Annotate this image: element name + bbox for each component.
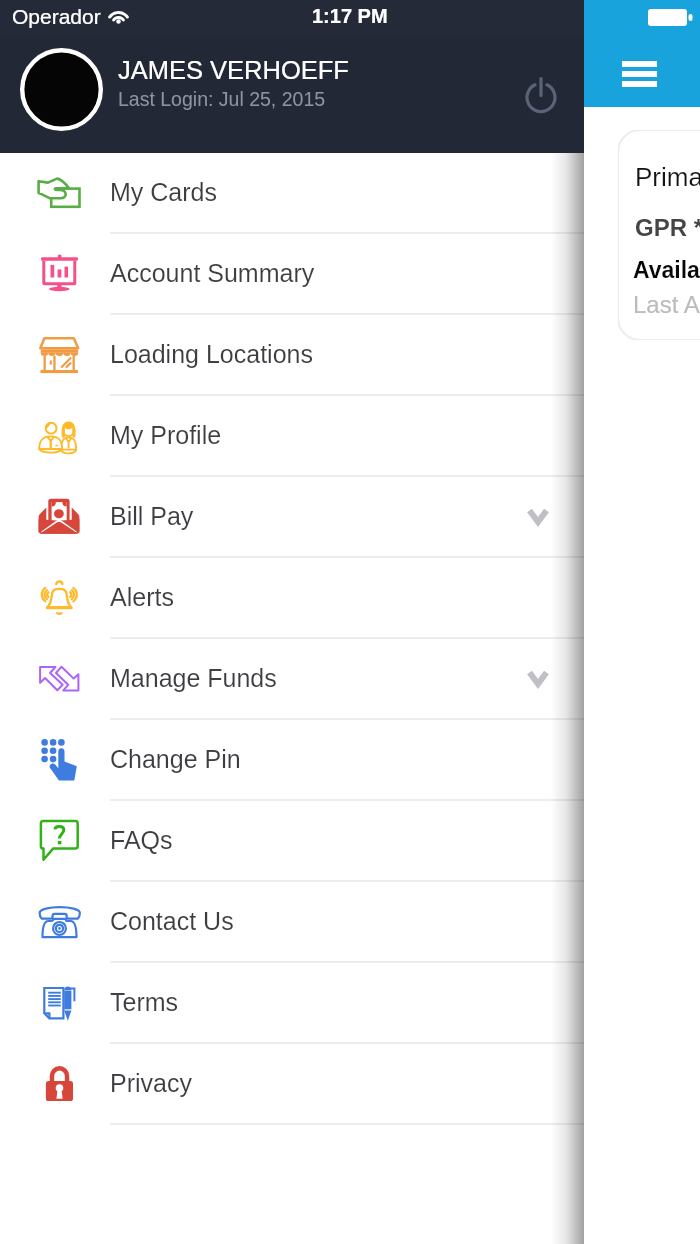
button[interactable]: Change Pin bbox=[0, 720, 584, 801]
button[interactable]: Manage Funds bbox=[0, 639, 584, 720]
button[interactable]: Loading Locations bbox=[0, 315, 584, 396]
staticText: Manage Funds bbox=[110, 664, 277, 692]
button[interactable]: Privacy bbox=[0, 1044, 584, 1125]
staticText: Bill Pay bbox=[110, 502, 194, 530]
button[interactable]: Account Summary bbox=[0, 234, 584, 315]
staticText: My Cards bbox=[110, 178, 217, 206]
staticText: FAQs bbox=[110, 826, 173, 854]
staticText: 1:17 PM bbox=[312, 5, 388, 27]
staticText: Primary bbox=[635, 162, 700, 191]
staticText: Last Login: Jul 25, 2015 bbox=[118, 88, 326, 110]
staticText: Contact Us bbox=[110, 907, 234, 935]
staticText: Change Pin bbox=[110, 745, 241, 773]
button[interactable]: FAQs bbox=[0, 801, 584, 882]
button[interactable]: My Profile bbox=[0, 396, 584, 477]
staticText: Loading Locations bbox=[110, 340, 313, 368]
staticText: Account Summary bbox=[110, 259, 315, 287]
staticText: GPR * bbox=[635, 214, 700, 241]
staticText: JAMES VERHOEFF bbox=[118, 56, 349, 84]
button[interactable]: My Cards bbox=[0, 153, 584, 234]
button[interactable]: Terms bbox=[0, 963, 584, 1044]
staticText: Alerts bbox=[110, 583, 174, 611]
staticText: Last A bbox=[633, 291, 700, 318]
staticText: Operador bbox=[12, 5, 101, 28]
staticText: Privacy bbox=[110, 1069, 192, 1097]
button[interactable]: Alerts bbox=[0, 558, 584, 639]
button[interactable]: Log out bbox=[517, 71, 565, 119]
staticText: My Profile bbox=[110, 421, 222, 449]
button[interactable]: Open navigation menu bbox=[604, 47, 674, 97]
staticText: Availa bbox=[633, 257, 700, 283]
button[interactable]: Bill Pay bbox=[0, 477, 584, 558]
button[interactable]: Contact Us bbox=[0, 882, 584, 963]
staticText: Terms bbox=[110, 988, 179, 1016]
